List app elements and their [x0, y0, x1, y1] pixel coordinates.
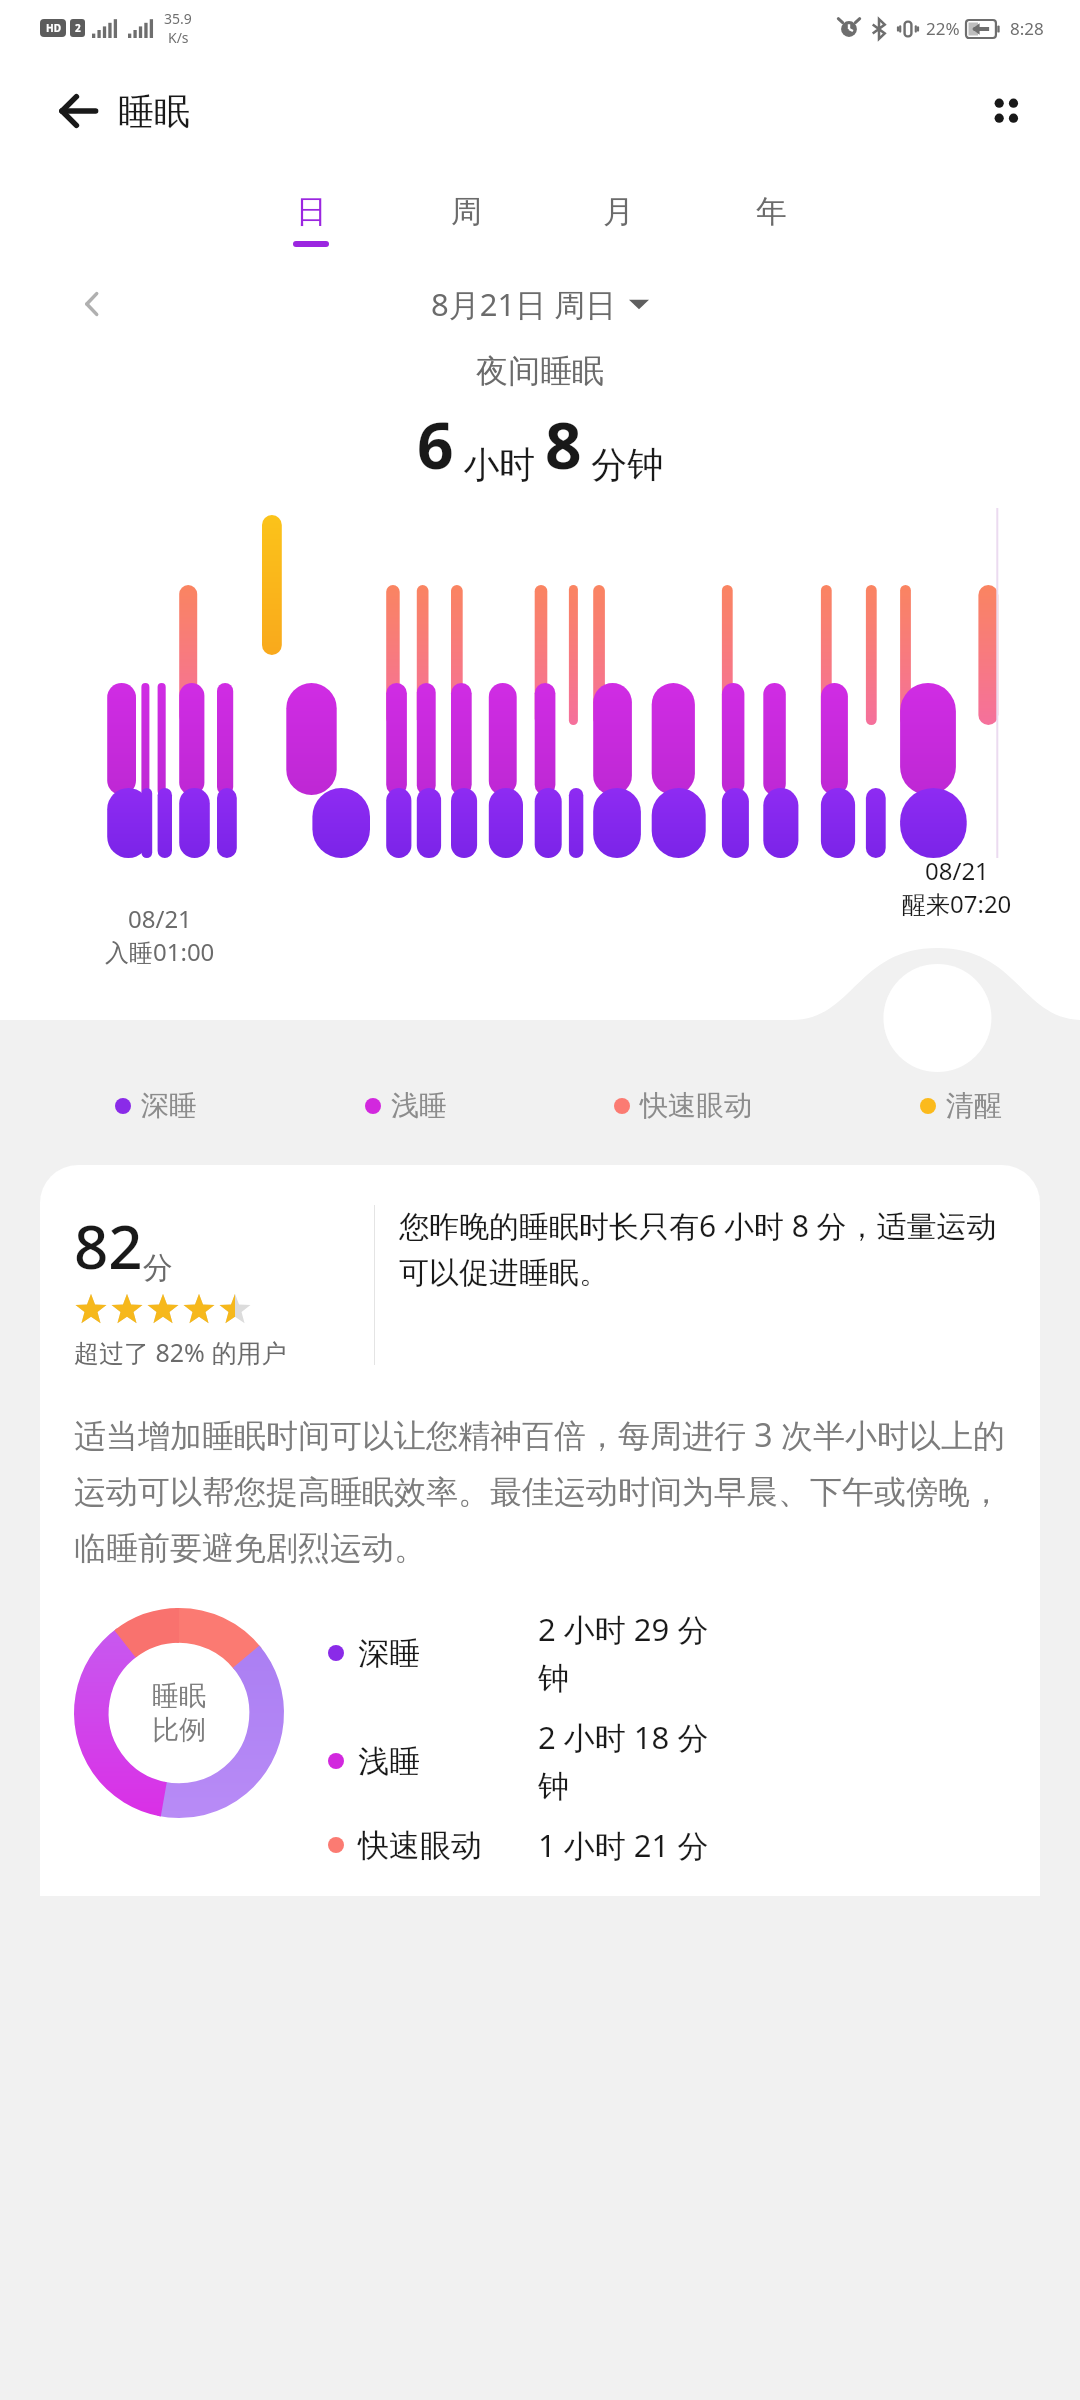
staticText: 月 [603, 192, 634, 231]
staticText: 22% [926, 17, 960, 40]
staticText: 08/21 [128, 902, 192, 935]
staticText: 醒来07:20 [902, 887, 1012, 920]
button[interactable]: 82 [40, 1165, 1040, 1896]
staticText: 6 [417, 401, 454, 488]
staticText: 快速眼动 [358, 1826, 538, 1865]
button[interactable]: 月 [595, 188, 642, 251]
staticText: 快速眼动 [640, 1088, 752, 1123]
staticText: 浅睡 [358, 1742, 538, 1781]
staticText: K/s [168, 28, 189, 47]
staticText: 睡眠 [118, 89, 190, 134]
staticText: 1 小时 21 分 [538, 1824, 709, 1866]
staticText: 周 [451, 192, 482, 231]
button[interactable]: 8月21日 周日 [425, 277, 655, 331]
staticText: 适当增加睡眠时间可以让您精神百倍，每周进行 3 次半小时以上的运动可以帮您提高睡… [74, 1413, 1006, 1568]
staticText: 8 [545, 401, 582, 488]
button[interactable]: 深睡 [115, 1088, 197, 1123]
staticText: HD [46, 21, 61, 35]
button[interactable]: Back [46, 79, 110, 143]
staticText: 分 [143, 1249, 173, 1287]
staticText: 深睡 [141, 1088, 197, 1123]
button[interactable]: 日 [285, 188, 337, 251]
button[interactable]: 清醒 [920, 1088, 1002, 1123]
staticText: 小时 [454, 439, 545, 488]
staticText: 日 [296, 192, 327, 231]
staticText: 您昨晚的睡眠时长只有6 小时 8 分，适量运动可以促进睡眠。 [399, 1205, 1006, 1292]
staticText: 睡眠 [152, 1679, 206, 1713]
staticText: 2 小时 29 分 钟 [538, 1608, 709, 1698]
staticText: 分钟 [582, 439, 664, 488]
staticText: 8:28 [1010, 17, 1044, 40]
button[interactable]: 周 [443, 188, 490, 251]
staticText: 入睡01:00 [105, 935, 215, 968]
button[interactable]: More options [974, 79, 1038, 143]
staticText: 比例 [152, 1713, 206, 1747]
staticText: 清醒 [946, 1088, 1002, 1123]
staticText: 夜间睡眠 [476, 351, 604, 391]
staticText: 08/21 [925, 854, 989, 887]
button[interactable]: Previous day [66, 278, 118, 330]
staticText: 深睡 [358, 1634, 538, 1673]
staticText: 2 小时 18 分 钟 [538, 1716, 709, 1806]
staticText: 82 [74, 1205, 143, 1287]
button[interactable]: 年 [748, 188, 795, 251]
button[interactable]: 浅睡 [365, 1088, 447, 1123]
staticText: 8月21日 周日 [431, 283, 617, 325]
staticText: 35.9 [164, 9, 192, 28]
button[interactable]: 快速眼动 [614, 1088, 752, 1123]
staticText: 2 [75, 21, 81, 35]
staticText: 年 [756, 192, 787, 231]
staticText: 浅睡 [391, 1088, 447, 1123]
staticText: 超过了 82% 的用户 [74, 1335, 287, 1369]
